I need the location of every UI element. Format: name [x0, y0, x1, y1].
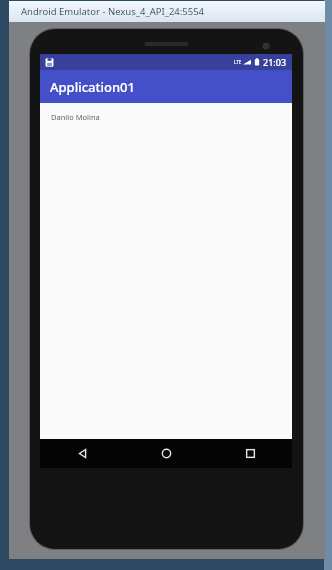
staticText: 21:03: [263, 56, 287, 68]
button[interactable]: Recent apps: [208, 439, 292, 468]
staticText: Application01: [50, 78, 135, 96]
staticText: LTE: [234, 59, 242, 65]
button[interactable]: Back: [40, 439, 124, 468]
button[interactable]: Home: [124, 439, 208, 468]
button[interactable]: Danilo Molina: [40, 103, 100, 122]
staticText: Android Emulator - Nexus_4_API_24:5554: [21, 5, 205, 18]
